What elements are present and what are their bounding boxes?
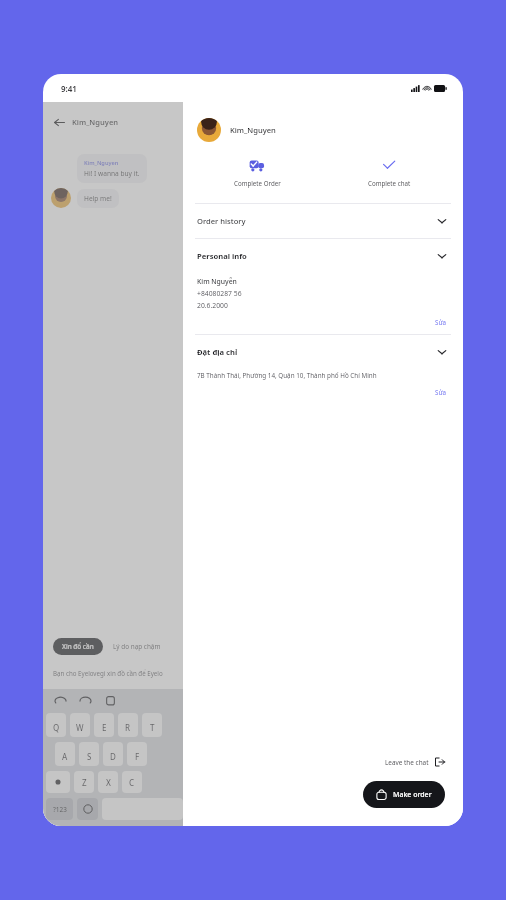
staticText: Complete chat — [368, 179, 411, 187]
button[interactable] — [43, 102, 183, 826]
button[interactable]: ?123 — [46, 798, 73, 820]
staticText: Kim_Nguyen — [72, 117, 119, 127]
button[interactable]: X — [98, 771, 118, 793]
staticText: Kim_Nguyen — [84, 159, 119, 167]
other: Back — [54, 117, 65, 128]
staticText: Complete Order — [234, 179, 281, 187]
button[interactable]: W — [70, 713, 90, 737]
button[interactable]: Complete Order — [191, 157, 323, 187]
button[interactable]: D — [103, 742, 123, 766]
button[interactable]: Kim_Nguyen — [183, 118, 463, 142]
staticText: 20.6.2000 — [197, 301, 228, 310]
staticText: 7B Thành Thái, Phường 14, Quận 10, Thành… — [197, 371, 377, 380]
button[interactable]: Sửa — [433, 386, 449, 398]
staticText: Help me! — [84, 194, 112, 203]
button[interactable]: Leave the chat — [183, 757, 463, 767]
button[interactable]: Xin đổ cần — [53, 638, 103, 655]
button[interactable]: Lý do nạp chậm — [113, 638, 161, 655]
staticText: Z — [82, 777, 87, 788]
staticText: E — [102, 722, 107, 733]
staticText: Sửa — [435, 388, 447, 396]
button[interactable]: Back — [43, 102, 183, 142]
button[interactable]: Complete chat — [323, 157, 455, 187]
staticText: A — [62, 751, 68, 762]
other: Redo — [80, 695, 91, 706]
staticText: W — [76, 722, 84, 733]
button[interactable]: R — [118, 713, 138, 737]
staticText: C — [129, 777, 135, 788]
staticText: Bạn cho Eyelovegi xin đồ cần để Eyelo — [53, 669, 163, 677]
staticText: Đặt địa chỉ — [197, 347, 238, 357]
other: Undo — [55, 695, 66, 706]
button[interactable]: F — [127, 742, 147, 766]
staticText: Make order — [393, 790, 432, 800]
staticText: Sửa — [435, 318, 447, 326]
staticText: Xin đổ cần — [62, 642, 94, 651]
button[interactable]: Make order — [363, 781, 445, 808]
staticText: Kim_Nguyen — [230, 125, 276, 135]
button[interactable]: T — [142, 713, 162, 737]
button[interactable]: Emoji — [77, 798, 98, 820]
staticText: +84080287 56 — [197, 289, 242, 298]
button[interactable]: Z — [74, 771, 94, 793]
button[interactable]: Đặt địa chỉ — [183, 335, 463, 369]
staticText: Order history — [197, 216, 246, 226]
staticText: Q — [53, 722, 60, 733]
staticText: R — [125, 722, 131, 733]
staticText: Leave the chat — [385, 758, 429, 767]
staticText: S — [87, 751, 92, 762]
staticText: X — [106, 777, 111, 788]
staticText: F — [135, 751, 140, 762]
button[interactable]: Personal info — [183, 239, 463, 273]
button[interactable]: Q — [46, 713, 66, 737]
button[interactable]: A — [55, 742, 75, 766]
button[interactable]: E — [94, 713, 114, 737]
staticText: D — [110, 751, 116, 762]
button[interactable]: Sửa — [433, 316, 449, 328]
button[interactable]: S — [79, 742, 99, 766]
staticText: Hi! I wanna buy it. — [84, 169, 140, 178]
staticText: Kim Nguyễn — [197, 277, 237, 286]
button[interactable]: Order history — [183, 204, 463, 238]
staticText: T — [150, 722, 155, 733]
button[interactable]: Shift — [46, 771, 70, 793]
staticText: ?123 — [53, 805, 67, 814]
button[interactable]: C — [122, 771, 142, 793]
other: Clipboard — [105, 695, 116, 706]
staticText: 9:41 — [61, 83, 77, 94]
staticText: Lý do nạp chậm — [113, 642, 161, 651]
staticText: Personal info — [197, 251, 247, 261]
